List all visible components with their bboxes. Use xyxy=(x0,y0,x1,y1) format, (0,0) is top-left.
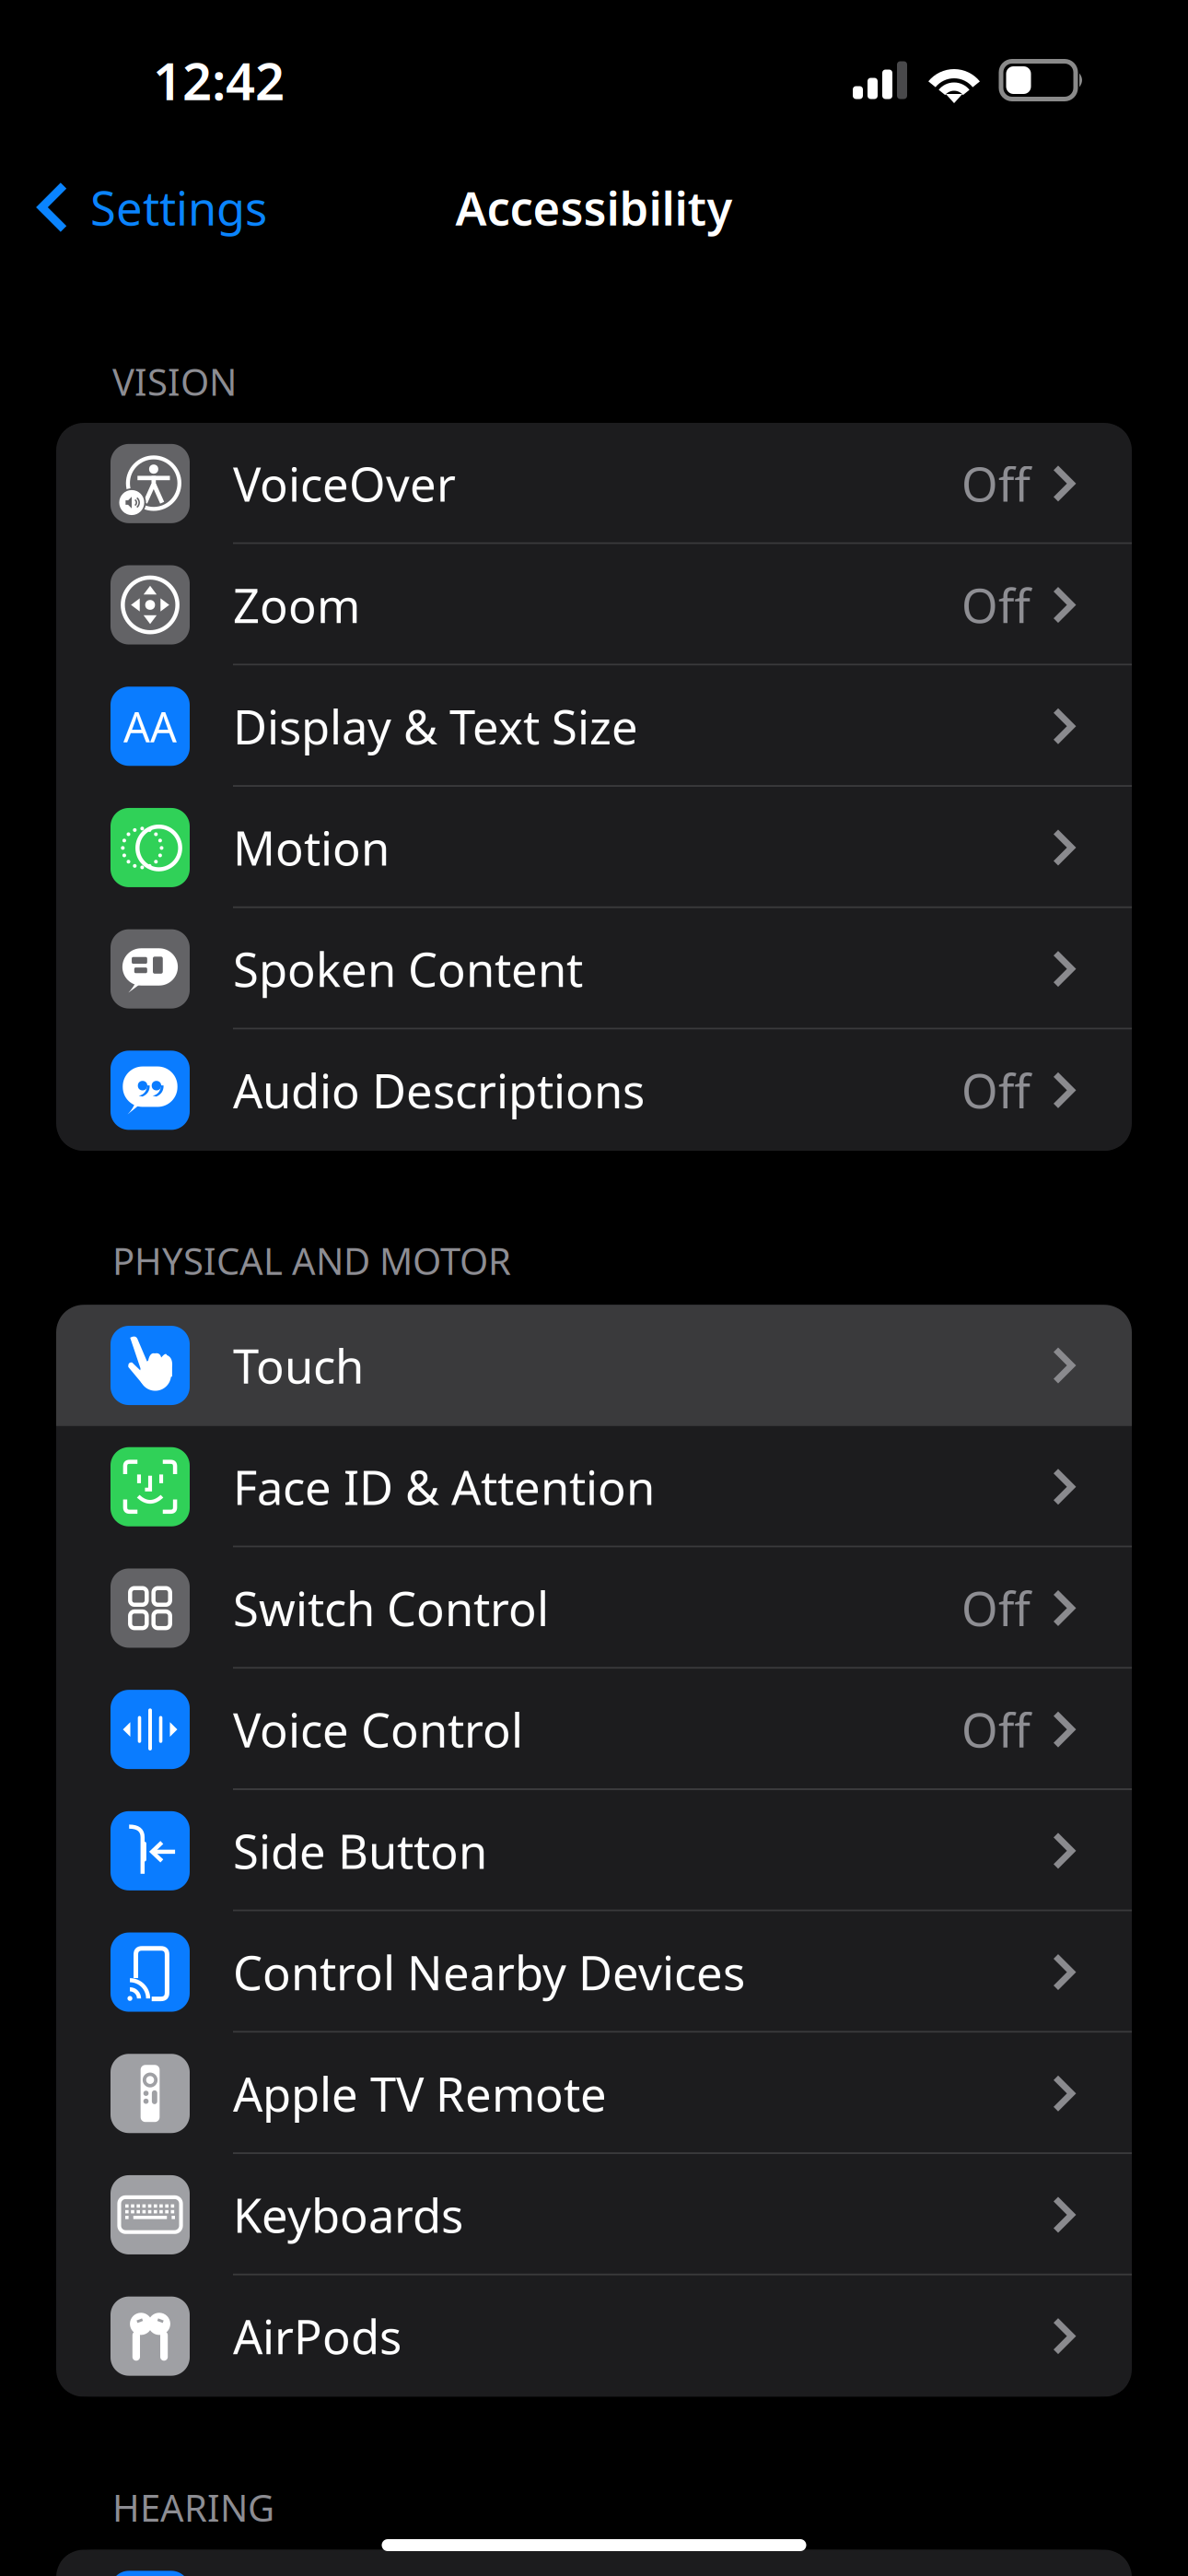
staticText: Audio Descriptions xyxy=(233,1059,645,1121)
button[interactable]: Motion xyxy=(56,787,1132,908)
button[interactable]: Apple TV Remote xyxy=(56,2033,1132,2154)
staticText: Off xyxy=(961,1698,1031,1760)
staticText: Side Button xyxy=(233,1820,487,1882)
staticText: Off xyxy=(961,1577,1031,1639)
button[interactable]: Audio Descriptions xyxy=(56,1030,1132,1151)
staticText: AirPods xyxy=(233,2305,402,2367)
staticText: Switch Control xyxy=(233,1577,549,1639)
staticText: Keyboards xyxy=(233,2184,463,2246)
staticText: PHYSICAL AND MOTOR xyxy=(112,1236,511,1285)
button[interactable]: Side Button xyxy=(56,1790,1132,1911)
button[interactable]: Keyboards xyxy=(56,2154,1132,2275)
staticText: Off xyxy=(961,574,1031,636)
staticText: Apple TV Remote xyxy=(233,2062,607,2124)
staticText: VISION xyxy=(112,357,237,406)
staticText: AA xyxy=(123,698,177,754)
button[interactable]: Spoken Content xyxy=(56,908,1132,1030)
staticText: Touch xyxy=(233,1334,364,1396)
button[interactable]: Touch xyxy=(56,1305,1132,1426)
button[interactable]: Zoom xyxy=(56,544,1132,666)
staticText: Accessibility xyxy=(455,176,733,238)
button[interactable]: Switch Control xyxy=(56,1547,1132,1669)
button[interactable]: VoiceOver xyxy=(56,423,1132,544)
button[interactable]: AA xyxy=(56,666,1132,787)
button[interactable]: AirPods xyxy=(56,2275,1132,2397)
button[interactable]: Voice Control xyxy=(56,1669,1132,1790)
staticText: Face ID & Attention xyxy=(233,1456,655,1518)
staticText: Off xyxy=(961,1059,1031,1121)
staticText: Voice Control xyxy=(233,1698,523,1760)
staticText: HEARING xyxy=(112,2483,274,2532)
staticText: Display & Text Size xyxy=(233,695,638,757)
button[interactable]: Hearing Devices xyxy=(56,2550,1132,2576)
staticText: Off xyxy=(961,453,1031,515)
staticText: VoiceOver xyxy=(233,453,456,515)
staticText: Motion xyxy=(233,817,390,879)
staticText: Spoken Content xyxy=(233,938,583,1000)
staticText: 12:42 xyxy=(153,46,285,114)
staticText: Zoom xyxy=(233,574,360,636)
staticText: Settings xyxy=(90,176,267,238)
staticText: Control Nearby Devices xyxy=(233,1941,745,2003)
button[interactable]: Settings xyxy=(0,161,285,253)
button[interactable]: Face ID & Attention xyxy=(56,1426,1132,1547)
button[interactable]: Control Nearby Devices xyxy=(56,1911,1132,2033)
